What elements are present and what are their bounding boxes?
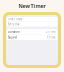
- staticText: Chime: [47, 36, 56, 39]
- staticText: Sound: [8, 36, 17, 39]
- staticText: Duration: [8, 30, 20, 33]
- staticText: New Timer: [18, 2, 45, 10]
- staticText: Every day: [8, 22, 19, 26]
- staticText: Timer name: [8, 17, 23, 21]
- staticText: 25 min: [46, 30, 56, 33]
